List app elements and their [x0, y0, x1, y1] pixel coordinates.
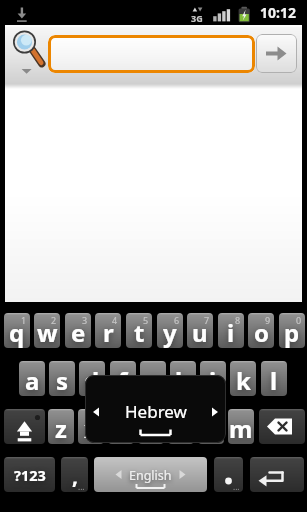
staticText: 8	[235, 314, 241, 326]
staticText: ?123	[14, 465, 46, 485]
staticText: 1	[21, 314, 27, 326]
staticText: c	[115, 412, 128, 444]
button[interactable]	[4, 409, 45, 444]
button[interactable]: c	[108, 409, 134, 444]
staticText: 6	[174, 314, 180, 326]
button[interactable]	[250, 457, 304, 492]
button[interactable]: h	[170, 361, 196, 396]
button[interactable]: f	[110, 361, 136, 396]
staticText: o	[254, 316, 269, 348]
staticText: a	[25, 364, 40, 396]
button[interactable]	[259, 409, 305, 444]
staticText: g	[145, 364, 161, 396]
staticText: 10:12	[260, 3, 296, 22]
staticText: y	[163, 316, 177, 348]
staticText: 0	[296, 314, 302, 326]
button[interactable]: s	[49, 361, 75, 396]
staticText: h	[175, 364, 191, 396]
button[interactable]: p	[279, 313, 305, 348]
button[interactable]: Hebrew	[85, 375, 226, 443]
button[interactable]: ,	[61, 457, 88, 492]
staticText: p	[284, 316, 300, 348]
button[interactable]: b	[168, 409, 194, 444]
staticText: r	[103, 316, 114, 348]
staticText: ,	[72, 462, 78, 491]
button[interactable]: l	[261, 361, 287, 396]
button[interactable]: e	[65, 313, 91, 348]
button[interactable]: x	[78, 409, 104, 444]
staticText: t	[134, 316, 145, 348]
staticText: ...	[233, 481, 240, 492]
staticText: k	[236, 364, 251, 396]
button[interactable]: d	[79, 361, 105, 396]
staticText: f	[118, 364, 128, 396]
staticText: x	[84, 412, 98, 444]
button[interactable]: o	[248, 313, 274, 348]
staticText: English	[129, 467, 172, 484]
staticText: m	[229, 412, 253, 444]
staticText: w	[37, 316, 58, 348]
staticText: v	[144, 412, 158, 444]
staticText: s	[56, 364, 69, 396]
staticText: u	[192, 316, 208, 348]
staticText: j	[209, 364, 217, 396]
staticText: l	[270, 364, 278, 396]
button[interactable]	[256, 34, 297, 73]
button[interactable]: r	[95, 313, 121, 348]
button[interactable]: English	[94, 457, 207, 492]
button[interactable]: ?123	[4, 457, 55, 492]
staticText: 3	[82, 314, 88, 326]
button[interactable]: m	[228, 409, 254, 444]
staticText: 4	[112, 314, 118, 326]
button[interactable]: q	[4, 313, 30, 348]
staticText: q	[9, 316, 25, 348]
staticText: 2	[51, 314, 57, 326]
button[interactable]: ...	[214, 457, 243, 492]
staticText: 3G	[191, 12, 203, 24]
button[interactable]: k	[230, 361, 256, 396]
button[interactable]: z	[48, 409, 74, 444]
staticText: z	[55, 412, 67, 444]
button[interactable]: i	[218, 313, 244, 348]
button[interactable]: g	[140, 361, 166, 396]
staticText: b	[173, 412, 189, 444]
button[interactable]: t	[126, 313, 152, 348]
staticText: i	[227, 316, 235, 348]
button[interactable]: n	[198, 409, 224, 444]
button[interactable]: a	[19, 361, 45, 396]
staticText: Hebrew	[125, 400, 187, 423]
button[interactable]	[48, 35, 255, 73]
button[interactable]: y	[157, 313, 183, 348]
button[interactable]: w	[34, 313, 60, 348]
staticText: ...	[78, 481, 85, 492]
staticText: 9	[265, 314, 271, 326]
button[interactable]: u	[187, 313, 213, 348]
staticText: d	[84, 364, 100, 396]
staticText: e	[71, 316, 86, 348]
staticText: 7	[204, 314, 210, 326]
button[interactable]: j	[200, 361, 226, 396]
button[interactable]: v	[138, 409, 164, 444]
staticText: n	[203, 412, 219, 444]
staticText: 5	[143, 314, 149, 326]
